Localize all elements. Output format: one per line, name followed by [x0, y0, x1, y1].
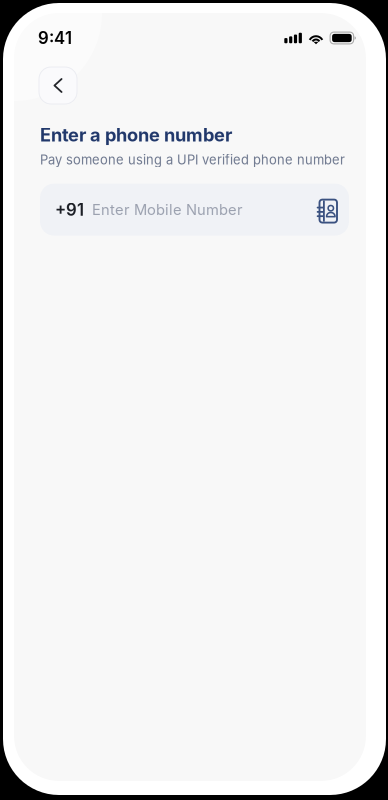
staticText: +91	[55, 199, 84, 220]
staticText: Pay someone using a UPI verified phone n…	[40, 152, 345, 167]
staticText: Enter a phone number	[40, 124, 232, 146]
button[interactable]: Back	[39, 67, 77, 104]
staticText: 9:41	[38, 28, 72, 48]
staticText: Enter Mobile Number	[92, 201, 243, 218]
button[interactable]: Choose from contacts	[317, 196, 338, 223]
